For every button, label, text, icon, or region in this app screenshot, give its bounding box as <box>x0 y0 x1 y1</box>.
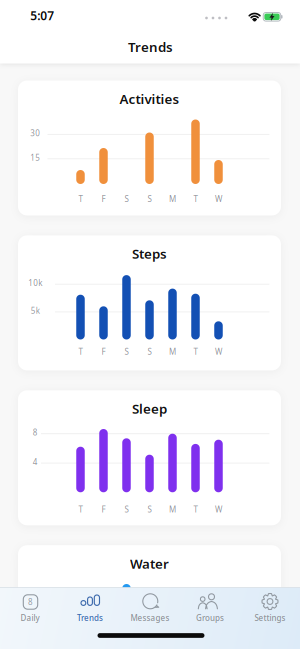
staticText: M <box>169 504 176 515</box>
staticText: Settings <box>254 613 285 623</box>
staticText: Trends <box>128 38 173 56</box>
staticText: 10k <box>28 278 42 288</box>
staticText: Messages <box>130 613 169 623</box>
button[interactable]: Trends <box>61 588 119 634</box>
staticText: Activities <box>119 90 179 108</box>
staticText: T <box>78 193 82 204</box>
staticText: 4 <box>33 457 38 467</box>
staticText: W <box>215 346 222 357</box>
staticText: Sleep <box>132 400 167 417</box>
staticText: T <box>193 504 197 515</box>
staticText: Steps <box>132 245 167 262</box>
staticText: S <box>124 346 128 357</box>
staticText: Water <box>130 555 169 572</box>
staticText: T <box>78 346 82 357</box>
staticText: Groups <box>196 613 224 623</box>
staticText: 5k <box>31 305 40 316</box>
staticText: F <box>101 504 105 515</box>
button[interactable]: Settings <box>241 588 299 634</box>
staticText: M <box>169 346 176 357</box>
button[interactable]: 8 <box>1 588 59 634</box>
staticText: S <box>147 193 151 204</box>
staticText: T <box>193 193 197 204</box>
staticText: M <box>169 193 176 204</box>
staticText: S <box>124 193 128 204</box>
staticText: S <box>147 504 151 515</box>
staticText: F <box>101 346 105 357</box>
staticText: T <box>78 504 82 515</box>
staticText: T <box>193 346 197 357</box>
staticText: 8 <box>33 427 38 438</box>
button[interactable]: Groups <box>181 588 239 634</box>
staticText: W <box>215 504 222 515</box>
button[interactable]: Messages <box>121 588 179 634</box>
staticText: F <box>101 193 105 204</box>
staticText: 30 <box>30 128 40 138</box>
staticText: 8 <box>28 596 33 607</box>
staticText: S <box>147 346 151 357</box>
staticText: W <box>215 193 222 204</box>
staticText: 15 <box>30 152 40 163</box>
staticText: 5:07 <box>30 7 54 23</box>
staticText: S <box>124 504 128 515</box>
staticText: Daily <box>20 613 39 623</box>
staticText: Trends <box>77 613 103 623</box>
